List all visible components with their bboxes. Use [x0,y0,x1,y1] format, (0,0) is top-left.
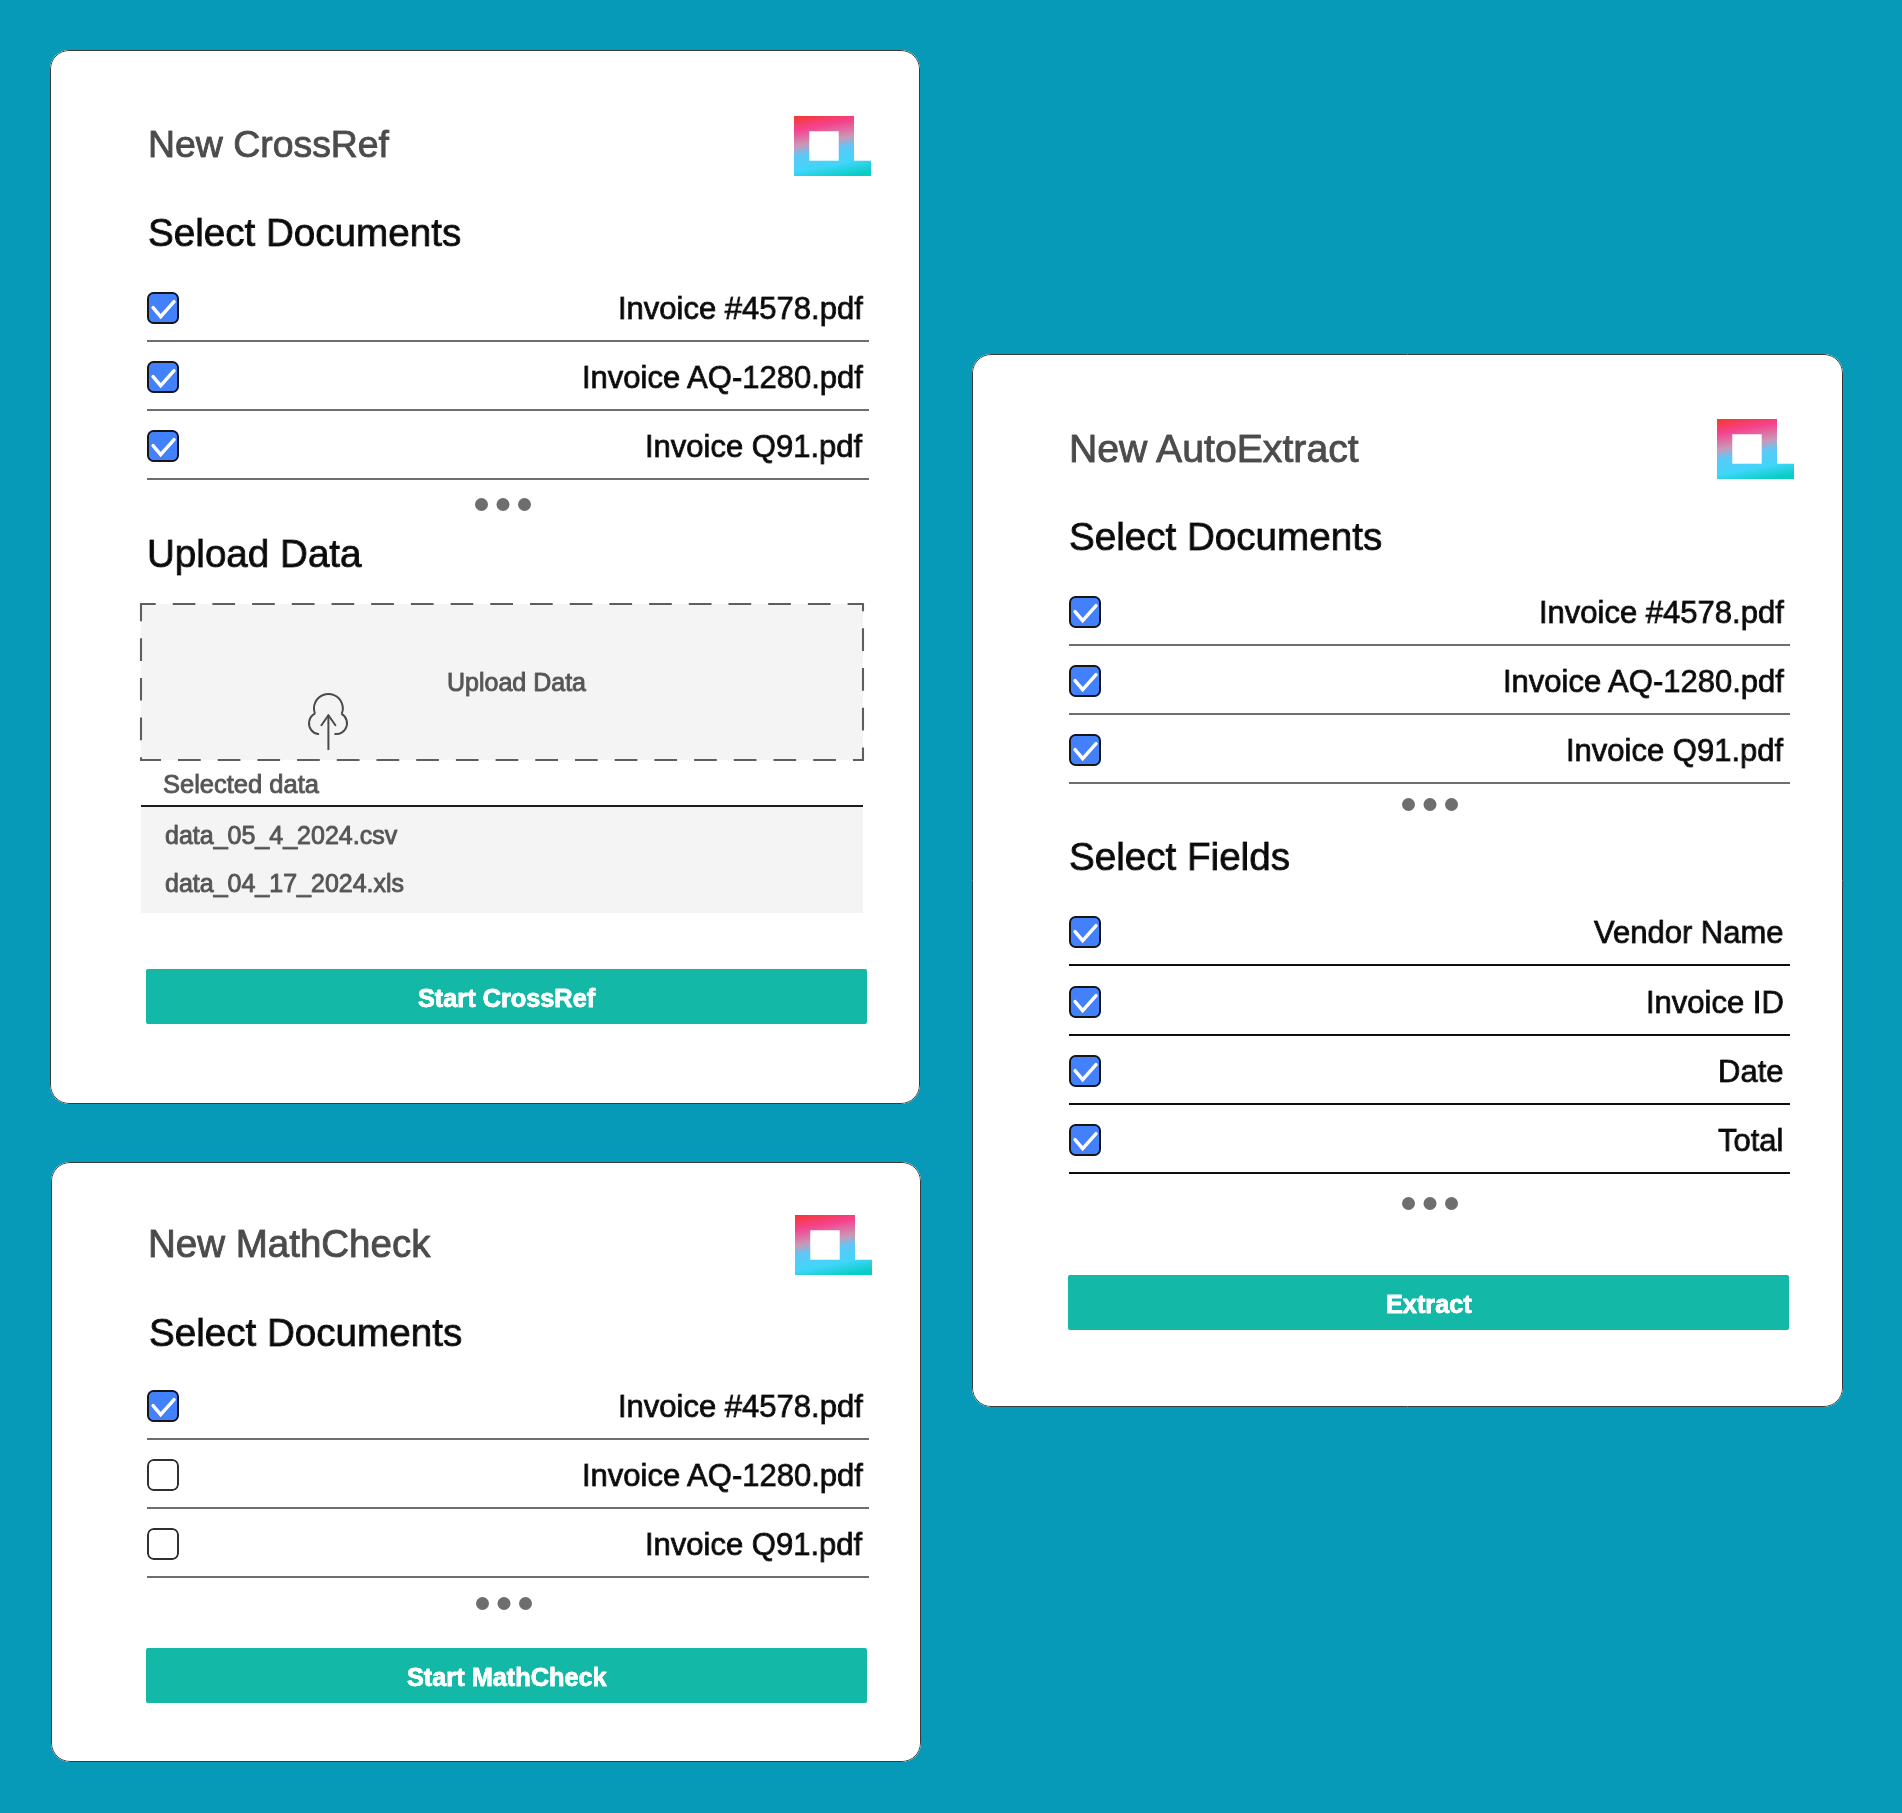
staticText: Invoice AQ-1280.pdf [1503,664,1784,699]
staticText: Invoice ID [1646,985,1784,1020]
staticText: Select Fields [1069,835,1290,878]
staticText: Upload Data [447,668,586,696]
button[interactable]: Selected [147,292,179,324]
staticText: Extract [1386,1290,1472,1318]
staticText: Invoice Q91.pdf [645,1527,863,1562]
staticText: New AutoExtract [1069,427,1359,471]
button[interactable]: Selected [1069,577,1790,646]
button[interactable]: Show more [475,498,531,511]
staticText: Start MathCheck [407,1663,607,1691]
staticText: Select Documents [1069,515,1383,558]
staticText: Selected data [163,770,319,798]
button[interactable]: Selected [1069,986,1101,1018]
staticText: Select Fields [1069,835,1290,878]
other: App logo [795,1215,872,1275]
staticText: Select Documents [148,211,462,254]
button[interactable]: Not selected [147,1440,869,1509]
button[interactable]: Not selected [147,1509,869,1578]
button[interactable]: Selected [1069,967,1790,1036]
staticText: Total [1718,1123,1784,1158]
staticText: Invoice AQ-1280.pdf [582,360,863,395]
staticText: Select Documents [149,1311,463,1354]
staticText: Upload Data [147,532,362,575]
staticText: Invoice AQ-1280.pdf [582,1458,863,1493]
other: App logo [794,116,871,176]
staticText: data_04_17_2024.xls [165,869,405,897]
staticText: New MathCheck [148,1222,431,1265]
staticText: Invoice #4578.pdf [618,291,863,326]
staticText: Vendor Name [1594,915,1784,950]
staticText: Vendor Name [1594,915,1784,950]
button[interactable]: Selected [1069,1036,1790,1105]
button[interactable]: Show more [1402,798,1458,811]
button[interactable]: Selected [1069,715,1790,784]
button[interactable]: Selected [147,411,869,480]
button[interactable]: Start CrossRef [146,969,867,1024]
staticText: Date [1718,1054,1784,1089]
button[interactable]: Selected [1069,897,1790,966]
staticText: Invoice #4578.pdf [618,1389,863,1424]
staticText: Total [1718,1123,1784,1158]
button[interactable]: Selected [147,342,869,411]
staticText: Selected data [163,770,319,798]
staticText: Start CrossRef [418,984,596,1012]
button[interactable]: Selected [1069,1124,1101,1156]
staticText: data_05_4_2024.csv [165,821,398,849]
button[interactable]: Selected [1069,734,1101,766]
staticText: Select Documents [1069,515,1383,558]
button[interactable]: Selected [1069,1055,1101,1087]
staticText: Select Documents [148,211,462,254]
button[interactable]: Selected [1069,596,1101,628]
staticText: Invoice #4578.pdf [618,1389,863,1424]
button[interactable]: Selected [147,1390,179,1422]
staticText: data_04_17_2024.xls [165,869,405,897]
staticText: Invoice AQ-1280.pdf [582,1458,863,1493]
button[interactable]: Selected [147,430,179,462]
staticText: data_05_4_2024.csv [165,821,398,849]
button[interactable]: Not selected [147,1459,179,1491]
staticText: Start CrossRef [418,984,596,1012]
button[interactable]: Upload Data [141,604,863,760]
staticText: New CrossRef [148,123,390,165]
button[interactable]: Selected [1069,665,1101,697]
staticText: New CrossRef [148,123,390,165]
button[interactable]: Show more [476,1597,532,1610]
staticText: Invoice #4578.pdf [618,291,863,326]
button[interactable]: Selected [1069,916,1101,948]
staticText: Invoice Q91.pdf [645,429,863,464]
staticText: New AutoExtract [1069,427,1359,471]
button[interactable]: Extract [1068,1275,1789,1330]
staticText: Invoice AQ-1280.pdf [582,360,863,395]
staticText: Extract [1386,1290,1472,1318]
staticText: Start MathCheck [407,1663,607,1691]
staticText: Upload Data [447,668,586,696]
button[interactable]: Selected [147,273,869,342]
button[interactable]: Selected [147,1371,869,1440]
staticText: Invoice #4578.pdf [1539,595,1784,630]
staticText: New MathCheck [148,1222,431,1265]
staticText: Invoice AQ-1280.pdf [1503,664,1784,699]
staticText: Date [1718,1054,1784,1089]
button[interactable]: Show more [1402,1197,1458,1210]
staticText: Invoice Q91.pdf [645,1527,863,1562]
staticText: Select Documents [149,1311,463,1354]
button[interactable]: Selected [1069,646,1790,715]
staticText: Invoice Q91.pdf [1566,733,1784,768]
staticText: Invoice ID [1646,985,1784,1020]
button[interactable]: Not selected [147,1528,179,1560]
button[interactable]: Selected [1069,1105,1790,1174]
staticText: Invoice #4578.pdf [1539,595,1784,630]
staticText: Upload Data [147,532,362,575]
other: App logo [1717,419,1794,479]
staticText: Invoice Q91.pdf [1566,733,1784,768]
button[interactable]: Start MathCheck [146,1648,867,1703]
button[interactable]: Selected [147,361,179,393]
staticText: Invoice Q91.pdf [645,429,863,464]
